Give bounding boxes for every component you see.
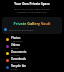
staticText: 86 clips — [11, 47, 19, 50]
staticText: Photos — [11, 36, 21, 40]
staticText: Empty — [11, 68, 18, 71]
button[interactable]: Videos — [6, 43, 62, 50]
staticText: 312 files — [11, 54, 20, 57]
staticText: 47 items — [11, 61, 20, 64]
staticText: Videos — [11, 43, 20, 47]
button[interactable]: Private Gallery Vault — [2, 17, 62, 34]
staticText: Bring your photos, videos and files toge… — [2, 8, 62, 14]
staticText: Private Gallery Vault — [4, 21, 60, 26]
staticText: End-to-end encrypted — [9, 28, 34, 31]
staticText: Your Own Private Space — [0, 2, 64, 6]
button[interactable]: Documents — [6, 50, 62, 57]
staticText: Documents — [11, 50, 27, 54]
button[interactable]: Photos — [6, 36, 62, 43]
staticText: 1,284 items — [11, 40, 23, 43]
button[interactable]: Recycle bin — [6, 64, 62, 71]
button[interactable]: Downloads — [6, 57, 62, 64]
staticText: Downloads — [11, 57, 26, 61]
staticText: Recycle bin — [11, 64, 26, 68]
